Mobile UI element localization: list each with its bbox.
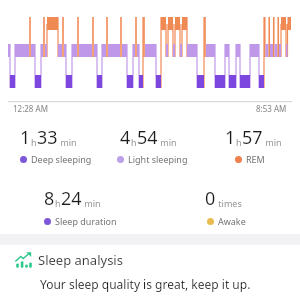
staticText: h [131, 136, 137, 148]
staticText: 24 [61, 186, 82, 211]
staticText: 8:53 AM [256, 103, 287, 114]
staticText: Awake [218, 215, 246, 227]
staticText: Deep sleeping [31, 153, 92, 165]
button[interactable]: Sleep analysis [38, 251, 249, 292]
staticText: 57 [242, 125, 263, 150]
staticText: 1 [20, 125, 31, 150]
staticText: h [236, 136, 242, 148]
staticText: 12:28 AM [13, 103, 48, 114]
staticText: Your sleep quality is great, keep it up. [40, 276, 251, 292]
staticText: Light sleeping [128, 153, 188, 165]
staticText: 4 [120, 125, 131, 150]
button[interactable]: REM [235, 153, 265, 165]
button[interactable]: Awake [207, 215, 246, 227]
staticText: min [158, 136, 177, 148]
staticText: 0 [205, 186, 216, 211]
button[interactable]: Sleep duration [44, 215, 117, 227]
staticText: h [55, 197, 61, 209]
staticText: Sleep analysis [38, 251, 123, 269]
staticText: min [82, 197, 101, 209]
staticText: Sleep duration [55, 215, 117, 227]
staticText: 8 [44, 186, 55, 211]
staticText: min [58, 136, 77, 148]
staticText: 54 [137, 125, 158, 150]
staticText: 33 [37, 125, 58, 150]
staticText: times [216, 197, 242, 209]
staticText: REM [246, 153, 265, 165]
staticText: h [31, 136, 37, 148]
staticText: 1 [225, 125, 236, 150]
button[interactable]: Light sleeping [117, 153, 188, 165]
staticText: min [263, 136, 282, 148]
button[interactable]: Deep sleeping [20, 153, 92, 165]
